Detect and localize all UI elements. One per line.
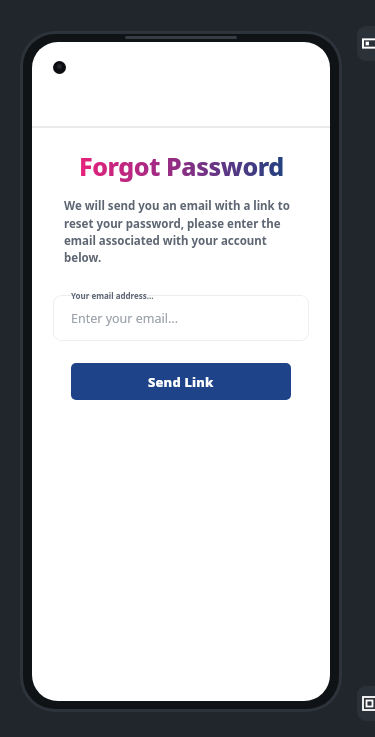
staticText: Send Link: [148, 373, 214, 391]
staticText: We will send you an email with a link to…: [64, 198, 300, 265]
button[interactable]: Toggle device toolbar: [357, 26, 375, 61]
button[interactable]: Send Link: [71, 363, 291, 400]
staticText: Your email address...: [71, 290, 154, 301]
staticText: Enter your email...: [71, 310, 178, 327]
button[interactable]: Enter your email...: [53, 295, 309, 341]
staticText: Forgot Password: [79, 149, 284, 183]
button[interactable]: Capture screenshot: [357, 686, 375, 721]
